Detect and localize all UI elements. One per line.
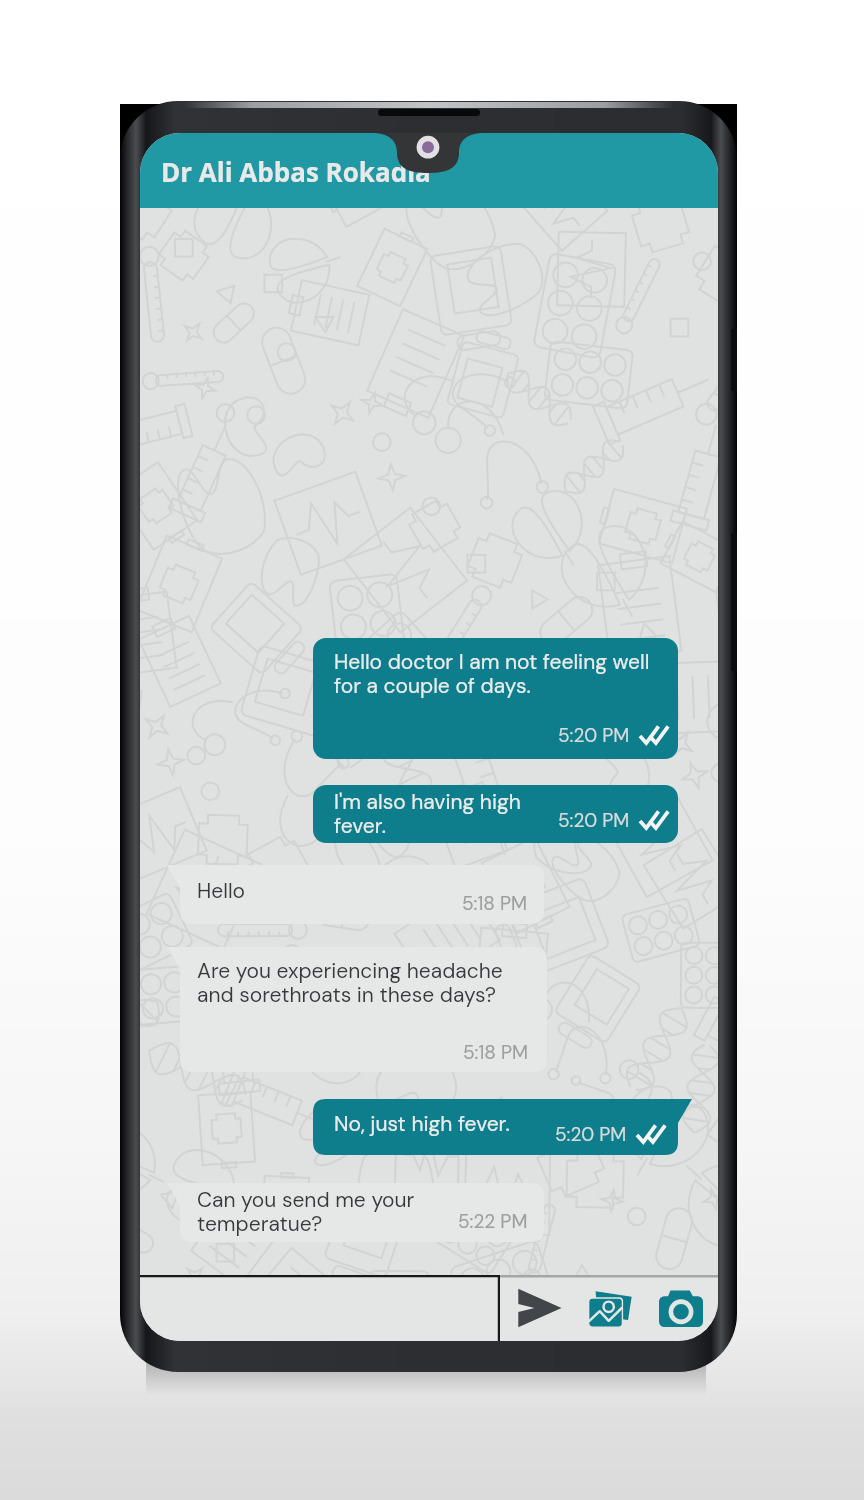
staticText: 5:18 PM <box>462 891 527 916</box>
button[interactable]: Hello <box>167 865 544 924</box>
button[interactable]: Message input <box>140 1275 500 1341</box>
staticText: 5:18 PM <box>463 1040 528 1065</box>
button[interactable]: Are you experiencing headache and soreth… <box>167 947 547 1072</box>
button[interactable]: Camera <box>652 1280 710 1336</box>
staticText: 5:22 PM <box>458 1209 528 1234</box>
button[interactable]: No, just high fever. <box>313 1099 692 1155</box>
staticText: 5:20 PM <box>558 808 630 833</box>
staticText: No, just high fever. <box>334 1113 510 1137</box>
button[interactable]: I'm also having high fever. <box>313 785 678 843</box>
staticText: 5:20 PM <box>555 1122 627 1147</box>
button[interactable]: Send <box>510 1280 568 1336</box>
button[interactable]: Gallery <box>581 1280 639 1336</box>
staticText: Dr Ali Abbas Rokadia <box>161 154 431 189</box>
staticText: Are you experiencing headache and soreth… <box>197 960 503 1008</box>
staticText: Hello <box>197 880 246 904</box>
button[interactable]: Hello doctor I am not feeling well for a… <box>313 638 678 759</box>
button[interactable]: Can you send me your temperatue? <box>167 1183 544 1242</box>
staticText: I'm also having high fever. <box>334 791 521 839</box>
staticText: Can you send me your temperatue? <box>197 1189 415 1237</box>
staticText: Hello doctor I am not feeling well for a… <box>334 651 650 699</box>
staticText: 5:20 PM <box>558 723 630 748</box>
